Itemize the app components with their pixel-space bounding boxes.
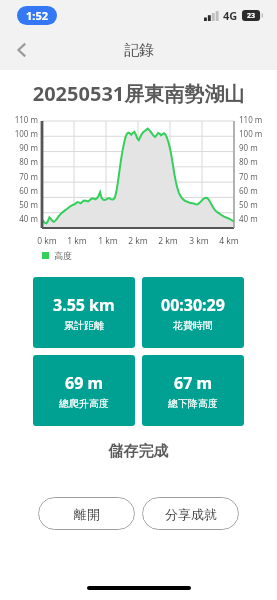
staticText: 00:30:29 [161, 294, 225, 316]
staticText: 4G [223, 8, 238, 23]
staticText: 90 m [4, 142, 38, 153]
staticText: 50 m [239, 199, 273, 210]
staticText: 分享成就 [165, 506, 217, 522]
staticText: 90 m [239, 142, 273, 153]
staticText: 110 m [4, 114, 38, 125]
button[interactable]: 分享成就 [142, 497, 239, 530]
staticText: 110 m [239, 114, 273, 125]
staticText: 69 m [65, 372, 104, 394]
staticText: 40 m [4, 213, 38, 224]
staticText: 總下降高度 [168, 397, 218, 410]
staticText: 3.55 km [53, 294, 115, 316]
staticText: 60 m [4, 185, 38, 196]
staticText: 40 m [239, 213, 273, 224]
staticText: 100 m [239, 128, 273, 139]
button[interactable]: 69 m [33, 355, 135, 426]
staticText: 離開 [74, 506, 100, 522]
staticText: 80 m [4, 156, 38, 167]
staticText: 2 km [155, 235, 181, 247]
staticText: 花費時間 [173, 319, 213, 332]
button[interactable]: 00:30:29 [142, 277, 244, 348]
staticText: 3 km [186, 235, 212, 247]
staticText: 80 m [239, 156, 273, 167]
button[interactable]: 67 m [142, 355, 244, 426]
staticText: 1:52 [26, 8, 48, 23]
staticText: 0 km [34, 235, 60, 247]
staticText: 累計距離 [64, 319, 104, 332]
button[interactable]: 3.55 km [33, 277, 135, 348]
staticText: 67 m [174, 372, 213, 394]
button[interactable]: Back [0, 30, 44, 70]
staticText: 總爬升高度 [59, 397, 109, 410]
staticText: 高度 [54, 250, 72, 261]
staticText: 100 m [4, 128, 38, 139]
staticText: 70 m [239, 171, 273, 182]
staticText: 60 m [239, 185, 273, 196]
staticText: 50 m [4, 199, 38, 210]
staticText: 1 km [95, 235, 121, 247]
staticText: 70 m [4, 171, 38, 182]
staticText: 儲存完成 [0, 442, 277, 461]
staticText: 1 km [64, 235, 90, 247]
staticText: 記錄 [124, 41, 154, 60]
staticText: 20250531屏東南勢湖山 [4, 80, 273, 107]
button[interactable]: 離開 [38, 497, 135, 530]
staticText: 2 km [125, 235, 151, 247]
staticText: 23 [247, 11, 256, 21]
staticText: 4 km [216, 235, 242, 247]
